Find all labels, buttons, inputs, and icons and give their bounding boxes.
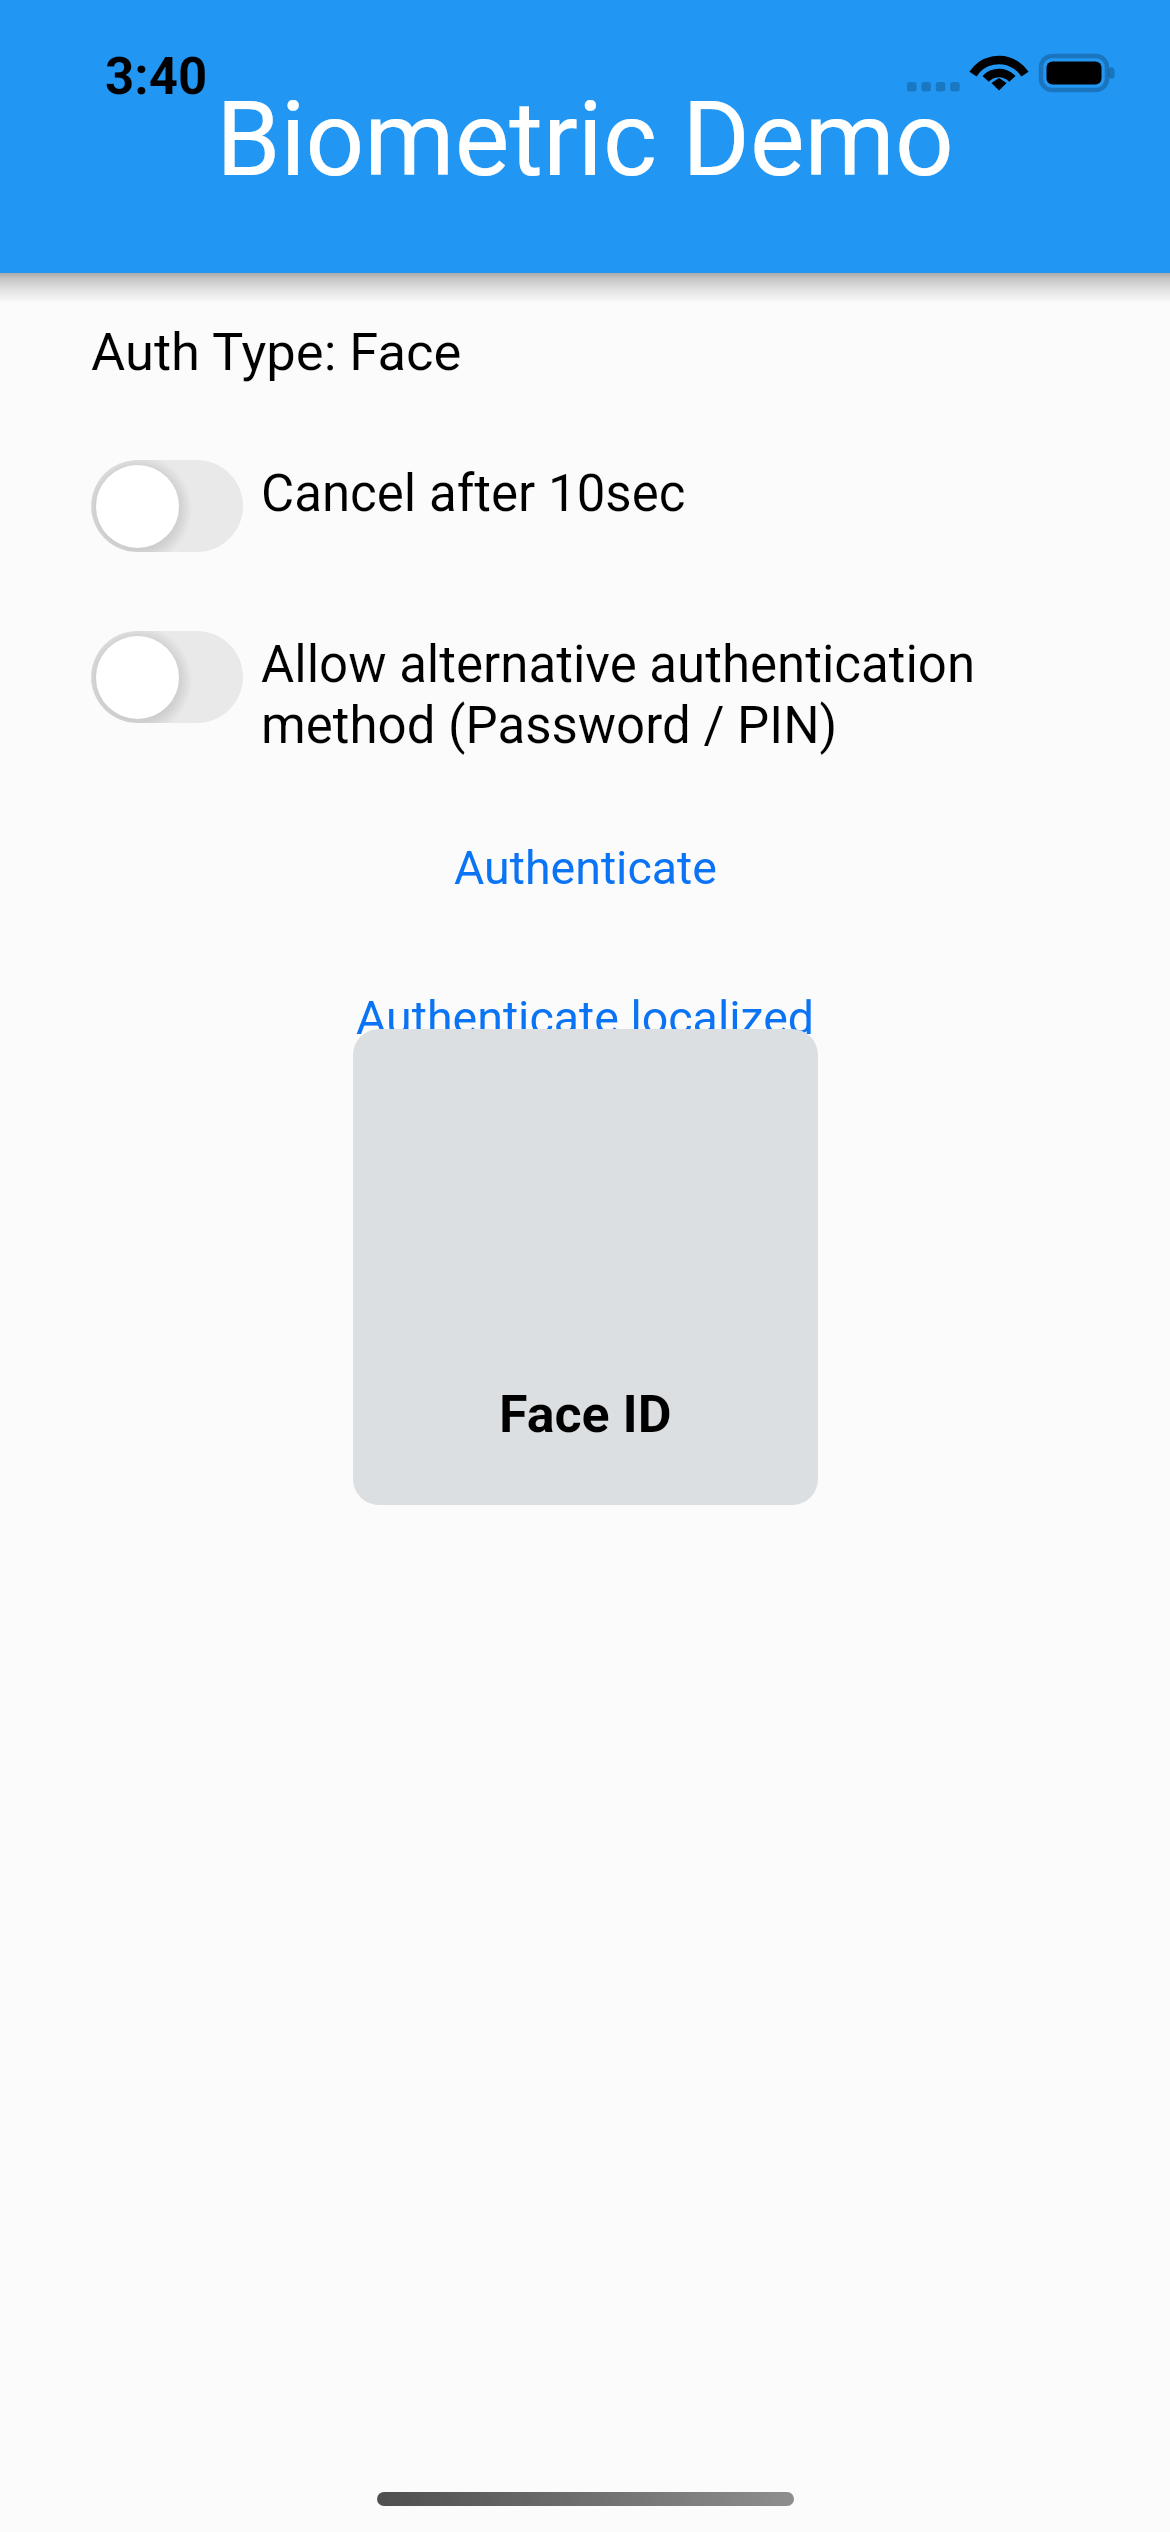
staticText: Authenticate localized	[356, 991, 815, 1045]
button[interactable]: Face ID	[353, 1029, 818, 1505]
staticText: Allow alternative authentication method …	[261, 635, 976, 756]
button[interactable]: Authenticate localized	[0, 986, 1170, 1050]
other: Signal, Wi-Fi and battery status	[895, 41, 1125, 101]
staticText: Biometric Demo	[0, 79, 1170, 200]
button[interactable]: Allow alternative authentication method …	[91, 631, 243, 723]
staticText: Authenticate	[454, 841, 717, 895]
button[interactable]: Cancel after 10sec	[91, 460, 243, 552]
staticText: Auth Type: Face	[91, 321, 462, 383]
staticText: 3:40	[105, 47, 208, 107]
staticText: Face ID	[499, 1384, 672, 1445]
staticText: Cancel after 10sec	[261, 464, 686, 524]
button[interactable]: Authenticate	[0, 836, 1170, 900]
